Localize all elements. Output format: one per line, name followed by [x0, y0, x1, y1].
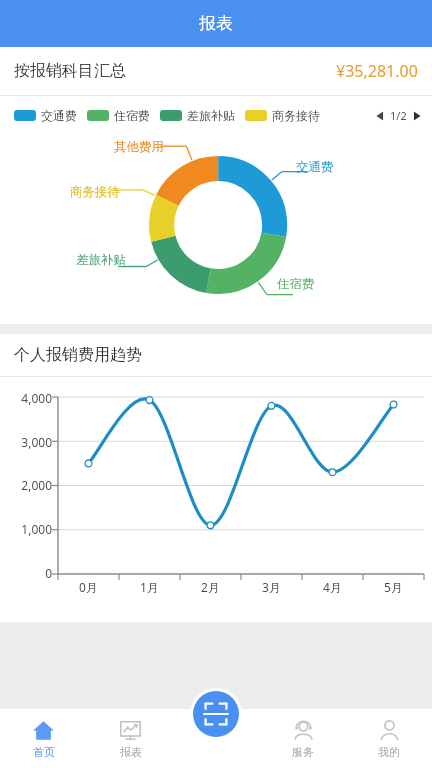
staticText: 1/2 — [390, 108, 407, 123]
staticText: 3月 — [241, 579, 302, 595]
button[interactable]: Previous — [373, 108, 424, 123]
staticText: 1月 — [119, 579, 180, 595]
staticText: 个人报销费用趋势 — [14, 345, 142, 365]
staticText: 报表 — [199, 13, 233, 34]
staticText: 差旅补贴 — [76, 252, 126, 268]
other: Previous — [373, 109, 387, 123]
staticText: 1,000 — [6, 521, 52, 537]
staticText: 5月 — [363, 579, 424, 595]
staticText: 住宿费 — [277, 276, 315, 292]
staticText: 其他费用 — [114, 139, 164, 155]
staticText: 住宿费 — [114, 108, 150, 123]
staticText: 服务 — [292, 745, 314, 759]
staticText: 报表 — [120, 745, 142, 759]
button[interactable]: 我的 — [346, 709, 432, 768]
button[interactable]: 扫一扫 — [193, 691, 239, 737]
staticText: 2月 — [180, 579, 241, 595]
staticText: 商务接待 — [272, 108, 320, 123]
staticText: 2,000 — [6, 477, 52, 493]
staticText: 0 — [6, 565, 52, 581]
staticText: 3,000 — [6, 434, 52, 450]
other: Next — [410, 109, 424, 123]
staticText: 按报销科目汇总 — [14, 61, 126, 81]
staticText: 交通费 — [41, 108, 77, 123]
staticText: 首页 — [33, 745, 55, 759]
staticText: 0月 — [58, 579, 119, 595]
staticText: 4,000 — [6, 390, 52, 406]
staticText: ¥35,281.00 — [336, 60, 418, 82]
button[interactable]: 服务 — [260, 709, 346, 768]
staticText: 商务接待 — [70, 184, 120, 200]
button[interactable]: 报表 — [87, 709, 174, 768]
staticText: 差旅补贴 — [187, 108, 235, 123]
button[interactable]: 首页 — [0, 709, 87, 768]
button[interactable]: 按报销科目汇总 — [0, 47, 432, 95]
staticText: 我的 — [378, 745, 400, 759]
staticText: 交通费 — [296, 159, 334, 175]
staticText: 4月 — [302, 579, 363, 595]
